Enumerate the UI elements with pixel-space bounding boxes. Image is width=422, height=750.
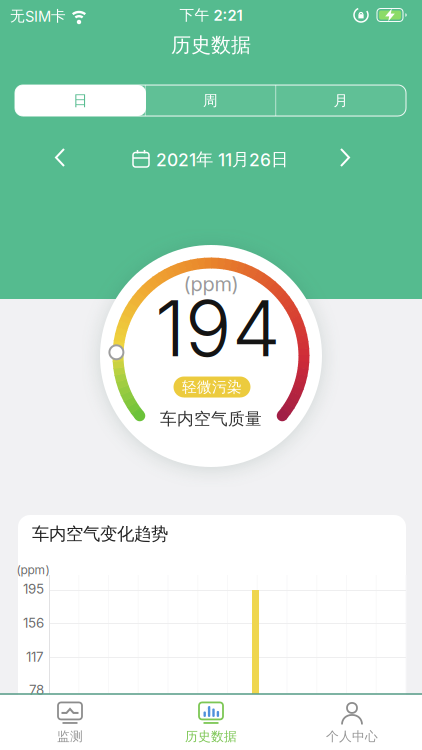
button[interactable]: 周	[145, 85, 275, 116]
button[interactable]: 历史数据	[161, 698, 261, 748]
staticText: 车内空气质量	[160, 408, 262, 429]
staticText: 194	[155, 281, 281, 375]
staticText: 监测	[57, 728, 83, 744]
staticText: 下午 2:21	[179, 6, 242, 24]
button[interactable]: 2021年 11月26日	[156, 149, 288, 170]
button[interactable]	[340, 148, 362, 170]
button[interactable]: 个人中心	[302, 698, 402, 748]
staticText: 车内空气变化趋势	[32, 523, 168, 545]
staticText: 78	[29, 682, 44, 698]
staticText: 156	[23, 615, 44, 631]
staticText: 月	[333, 91, 348, 109]
staticText: 周	[203, 91, 218, 109]
staticText: 历史数据	[185, 728, 237, 744]
staticText: 无SIM卡	[10, 7, 66, 25]
staticText: (ppm)	[16, 563, 49, 577]
button[interactable]: 日	[15, 85, 146, 116]
staticText: 2021年 11月26日	[156, 149, 288, 170]
button[interactable]: 月	[276, 85, 406, 116]
staticText: (ppm)	[183, 272, 238, 296]
staticText: 117	[26, 649, 44, 665]
staticText: 个人中心	[326, 728, 378, 744]
staticText: 195	[23, 581, 44, 597]
button[interactable]: 轻微污染	[173, 376, 250, 397]
button[interactable]	[55, 148, 77, 170]
staticText: 轻微污染	[182, 378, 242, 396]
staticText: 日	[73, 91, 88, 109]
staticText: 历史数据	[171, 32, 251, 58]
button[interactable]: 监测	[20, 698, 120, 748]
